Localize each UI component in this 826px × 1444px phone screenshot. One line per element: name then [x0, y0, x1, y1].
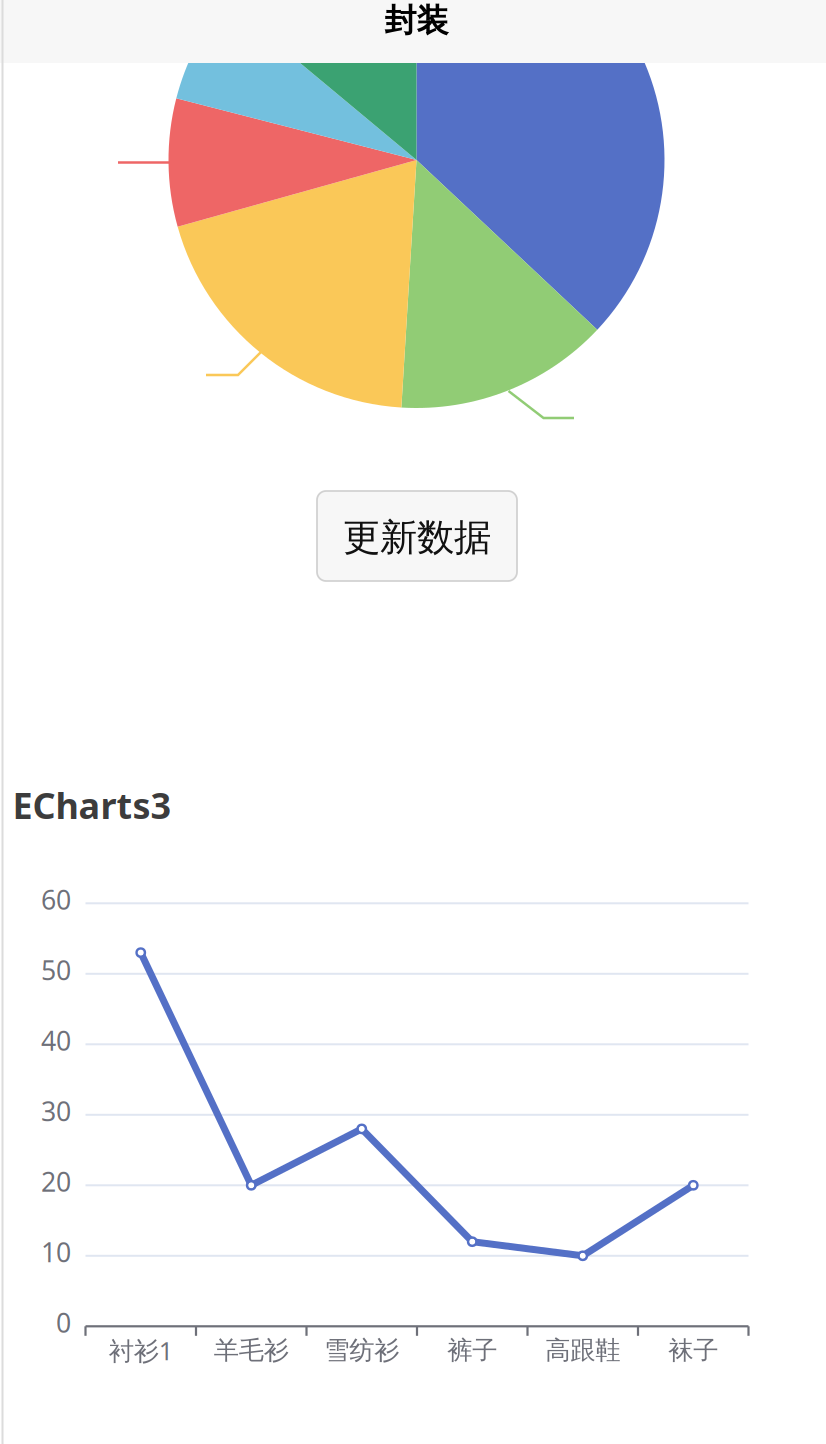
- staticText: 0: [56, 1305, 71, 1340]
- staticText: 封装: [384, 1, 448, 40]
- staticText: ECharts3: [12, 781, 171, 829]
- staticText: 衬衫1: [109, 1333, 173, 1367]
- staticText: 更新数据: [343, 515, 491, 560]
- button[interactable]: 更新数据: [317, 491, 517, 581]
- staticText: 10: [41, 1234, 71, 1269]
- staticText: 50: [41, 952, 71, 987]
- staticText: 30: [41, 1093, 71, 1128]
- staticText: 裤子: [447, 1335, 497, 1366]
- staticText: 袜子: [668, 1335, 718, 1366]
- staticText: 60: [41, 882, 71, 917]
- staticText: 羊毛衫: [214, 1335, 289, 1366]
- staticText: 20: [41, 1164, 71, 1199]
- staticText: 40: [41, 1023, 71, 1058]
- staticText: 高跟鞋: [545, 1335, 620, 1366]
- staticText: 雪纺衫: [324, 1335, 399, 1366]
